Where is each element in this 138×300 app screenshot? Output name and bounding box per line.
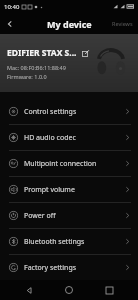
staticText: My device — [47, 18, 92, 30]
staticText: Reviews — [112, 20, 133, 27]
button[interactable]: Prompt volume — [0, 177, 138, 202]
staticText: Factory settings — [24, 263, 77, 273]
staticText: Multipoint connection — [24, 159, 97, 169]
staticText: 10:40 — [4, 3, 20, 11]
button[interactable]: Bluetooth settings — [0, 229, 138, 254]
staticText: Power off — [24, 211, 56, 221]
staticText: Firmware: 1.0.0 — [7, 73, 47, 80]
button[interactable]: Back — [0, 14, 20, 34]
button[interactable]: Back — [18, 280, 40, 300]
button[interactable]: Power off — [0, 203, 138, 228]
button[interactable]: Rename device — [80, 48, 90, 58]
staticText: HD audio codec — [24, 133, 76, 143]
staticText: Control settings — [24, 107, 77, 117]
button[interactable]: EDIFIER STAX S... — [0, 34, 138, 92]
button[interactable]: Reviews — [107, 16, 138, 31]
staticText: EDIFIER STAX S... — [7, 47, 77, 59]
button[interactable]: Recent apps — [98, 280, 120, 300]
staticText: Mac: 08:F0:B6:11:88:49 — [7, 64, 66, 71]
button[interactable]: Multipoint connection — [0, 151, 138, 176]
button[interactable]: Home — [58, 280, 80, 300]
staticText: Prompt volume — [24, 185, 75, 195]
staticText: Bluetooth settings — [24, 237, 85, 247]
button[interactable]: HD audio codec — [0, 125, 138, 150]
button[interactable]: Factory settings — [0, 255, 138, 280]
button[interactable]: Control settings — [0, 99, 138, 124]
